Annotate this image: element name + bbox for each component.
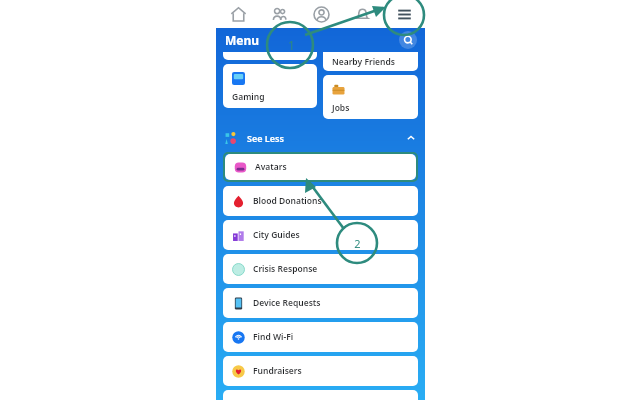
button[interactable]: Profile: [301, 1, 341, 27]
button[interactable]: Blood Donations: [223, 186, 418, 216]
staticText: 2: [354, 236, 361, 251]
button[interactable]: Gaming: [223, 64, 317, 108]
button[interactable]: Friends: [259, 1, 299, 27]
button[interactable]: Nearby Friends: [323, 52, 418, 71]
staticText: Fundraisers: [253, 365, 302, 377]
button[interactable]: Fundraisers: [223, 356, 418, 386]
staticText: Crisis Response: [253, 263, 318, 275]
button[interactable]: City Guides: [223, 220, 418, 250]
staticText: See Less: [247, 132, 284, 144]
staticText: Device Requests: [253, 297, 321, 309]
button[interactable]: Avatars: [225, 154, 416, 180]
button[interactable]: Search: [399, 31, 417, 49]
staticText: 1: [288, 37, 295, 53]
button[interactable]: [223, 390, 418, 400]
staticText: Nearby Friends: [332, 56, 395, 68]
staticText: Blood Donations: [253, 195, 322, 207]
button[interactable]: Jobs: [323, 75, 418, 119]
staticText: City Guides: [253, 229, 300, 241]
staticText: Gaming: [232, 91, 265, 103]
button[interactable]: See Less: [216, 127, 425, 149]
staticText: Menu: [225, 32, 260, 48]
button[interactable]: Crisis Response: [223, 254, 418, 284]
button[interactable]: Home: [218, 1, 258, 27]
button[interactable]: Notifications: [342, 1, 382, 27]
staticText: Avatars: [255, 161, 287, 173]
button[interactable]: [223, 52, 317, 60]
button[interactable]: Device Requests: [223, 288, 418, 318]
staticText: Jobs: [332, 102, 350, 114]
button[interactable]: Find Wi-Fi: [223, 322, 418, 352]
staticText: Find Wi-Fi: [253, 331, 294, 343]
button[interactable]: Menu: [384, 1, 424, 27]
